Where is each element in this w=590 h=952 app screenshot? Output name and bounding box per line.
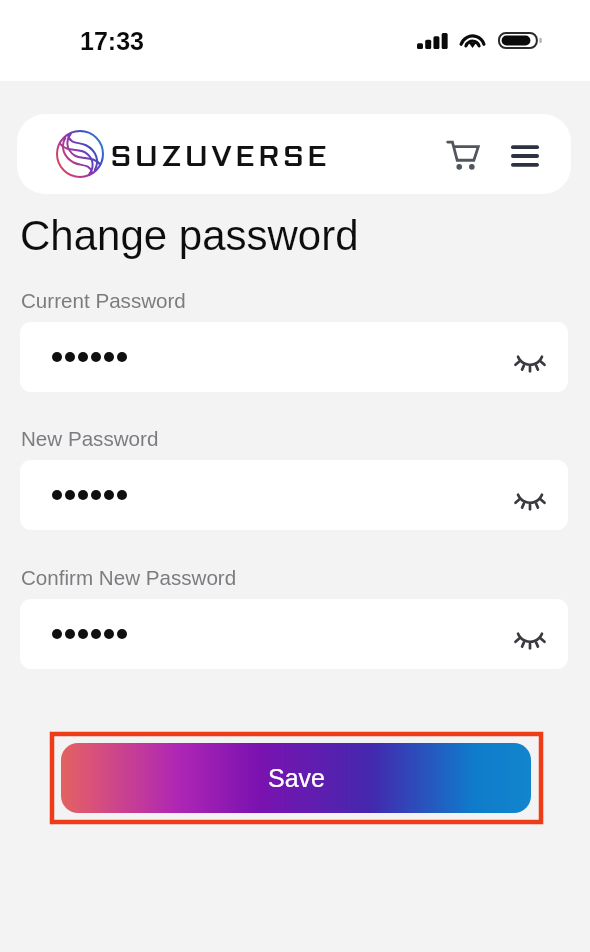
staticText: 17:33 xyxy=(80,27,144,55)
staticText: Current Password xyxy=(21,289,186,312)
button[interactable]: Show password xyxy=(506,610,554,658)
button[interactable]: Save xyxy=(61,743,531,813)
staticText: SUZUVERSE xyxy=(111,145,331,172)
staticText: Save xyxy=(268,764,325,792)
staticText: New Password xyxy=(21,427,159,450)
button[interactable]: Show password xyxy=(20,322,568,392)
staticText: Change password xyxy=(20,212,359,259)
button[interactable]: Show password xyxy=(506,471,554,519)
button[interactable]: Show password xyxy=(506,333,554,381)
button[interactable]: Cart xyxy=(440,130,488,178)
button[interactable]: Show password xyxy=(20,599,568,669)
button[interactable]: Show password xyxy=(20,460,568,530)
staticText: SUZUVERSE xyxy=(110,145,330,172)
button[interactable]: Menu xyxy=(501,132,549,180)
staticText: Confirm New Password xyxy=(21,566,237,589)
